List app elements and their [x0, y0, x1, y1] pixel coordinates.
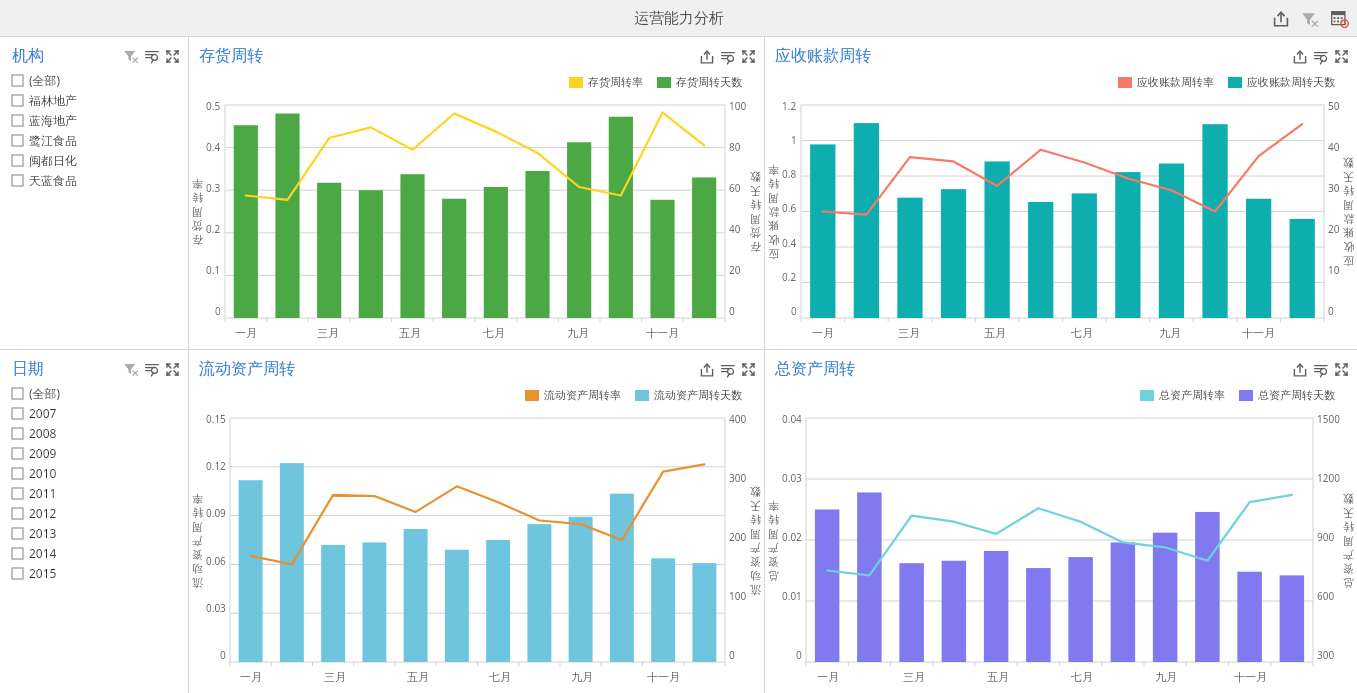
- button[interactable]: 刷新时间: [1327, 6, 1351, 30]
- staticText: 0.04: [782, 412, 802, 426]
- button[interactable]: 2010: [12, 463, 184, 483]
- staticText: 一月: [240, 670, 262, 684]
- staticText: 存货周转天数: [676, 75, 742, 89]
- button[interactable]: 2009: [12, 443, 184, 463]
- staticText: 转: [768, 513, 779, 527]
- staticText: 50: [1328, 99, 1340, 113]
- button[interactable]: 日期: [12, 359, 44, 379]
- staticText: 三月: [324, 670, 346, 684]
- button[interactable]: 2008: [12, 423, 184, 443]
- button[interactable]: 2007: [12, 403, 184, 423]
- button[interactable]: 导出: [696, 46, 717, 67]
- button[interactable]: 流动资产周转天数: [635, 388, 742, 402]
- staticText: 天: [1343, 170, 1354, 184]
- staticText: 转: [192, 506, 203, 520]
- staticText: 30: [1328, 181, 1340, 195]
- staticText: 40: [1328, 140, 1340, 154]
- staticText: 0.4: [206, 140, 221, 154]
- staticText: 天: [750, 499, 761, 513]
- button[interactable]: 应收账款周转率: [1118, 75, 1214, 89]
- button[interactable]: 导出: [696, 359, 717, 380]
- button[interactable]: 存货周转: [199, 46, 263, 66]
- staticText: 七月: [483, 326, 505, 340]
- staticText: 0.03: [782, 471, 802, 485]
- staticText: 0: [220, 648, 226, 662]
- staticText: 转: [1343, 184, 1354, 198]
- button[interactable]: 全屏: [162, 359, 182, 379]
- staticText: 0: [1328, 304, 1334, 318]
- staticText: 五月: [407, 670, 429, 684]
- staticText: 200: [729, 530, 747, 544]
- staticText: 动: [192, 562, 203, 576]
- staticText: 应收账款周转: [775, 46, 871, 66]
- button[interactable]: 全屏: [1331, 46, 1351, 66]
- staticText: 流动资产周转: [199, 359, 295, 379]
- staticText: 0.2: [782, 270, 797, 284]
- button[interactable]: 清除筛选: [120, 358, 141, 379]
- button[interactable]: 排序搜索: [141, 45, 162, 66]
- button[interactable]: 全屏: [738, 359, 758, 379]
- staticText: 0: [215, 304, 221, 318]
- button[interactable]: 流动资产周转: [199, 359, 295, 379]
- button[interactable]: 总资产周转天数: [1239, 388, 1335, 402]
- button[interactable]: 导出: [1289, 46, 1310, 67]
- button[interactable]: 鹭江食品: [12, 130, 184, 150]
- staticText: (全部): [29, 385, 61, 401]
- staticText: 2015: [29, 565, 57, 581]
- button[interactable]: 总资产周转率: [1140, 388, 1225, 402]
- button[interactable]: 天蓝食品: [12, 170, 184, 190]
- staticText: 流: [192, 576, 203, 590]
- staticText: (全部): [29, 72, 61, 88]
- button[interactable]: 应收账款周转: [775, 46, 871, 66]
- button[interactable]: 应收账款周转天数: [1228, 75, 1335, 89]
- button[interactable]: 全屏: [162, 46, 182, 66]
- staticText: 0.6: [782, 201, 797, 215]
- staticText: 0.12: [206, 459, 226, 473]
- button[interactable]: 排序搜索: [717, 46, 738, 67]
- staticText: 1: [791, 133, 797, 147]
- staticText: 转: [768, 177, 779, 191]
- staticText: 0.8: [782, 167, 797, 181]
- button[interactable]: 总资产周转: [775, 359, 855, 379]
- button[interactable]: 排序搜索: [141, 358, 162, 379]
- button[interactable]: 排序搜索: [1310, 359, 1331, 380]
- staticText: 应: [768, 247, 779, 261]
- staticText: 600: [1317, 589, 1335, 603]
- staticText: 七月: [1071, 326, 1093, 340]
- staticText: 0.5: [206, 99, 221, 113]
- staticText: 2010: [29, 465, 57, 481]
- button[interactable]: 排序搜索: [1310, 46, 1331, 67]
- staticText: 转: [750, 198, 761, 212]
- staticText: 天: [750, 184, 761, 198]
- button[interactable]: 存货周转率: [569, 75, 643, 89]
- button[interactable]: 存货周转天数: [657, 75, 742, 89]
- button[interactable]: 2011: [12, 483, 184, 503]
- staticText: 转: [192, 191, 203, 205]
- button[interactable]: 全屏: [738, 46, 758, 66]
- staticText: 产: [192, 534, 203, 548]
- staticText: 总资产周转天数: [1258, 388, 1335, 402]
- button[interactable]: 流动资产周转率: [525, 388, 621, 402]
- button[interactable]: 清除筛选: [1298, 7, 1321, 30]
- button[interactable]: 2014: [12, 543, 184, 563]
- button[interactable]: 机构: [12, 46, 44, 66]
- button[interactable]: 2015: [12, 563, 184, 583]
- button[interactable]: 清除筛选: [120, 45, 141, 66]
- button[interactable]: 导出: [1289, 359, 1310, 380]
- button[interactable]: (全部): [12, 383, 184, 403]
- staticText: 率: [768, 163, 779, 177]
- staticText: 货: [750, 226, 761, 240]
- button[interactable]: 全屏: [1331, 359, 1351, 379]
- staticText: 2007: [29, 405, 57, 421]
- button[interactable]: 蓝海地产: [12, 110, 184, 130]
- button[interactable]: 排序搜索: [717, 359, 738, 380]
- button[interactable]: 福林地产: [12, 90, 184, 110]
- button[interactable]: (全部): [12, 70, 184, 90]
- staticText: 0.03: [206, 601, 226, 615]
- staticText: 应: [1343, 254, 1354, 268]
- button[interactable]: 2013: [12, 523, 184, 543]
- staticText: 九月: [1155, 670, 1177, 684]
- button[interactable]: 闽都日化: [12, 150, 184, 170]
- button[interactable]: 2012: [12, 503, 184, 523]
- button[interactable]: 导出: [1269, 7, 1292, 30]
